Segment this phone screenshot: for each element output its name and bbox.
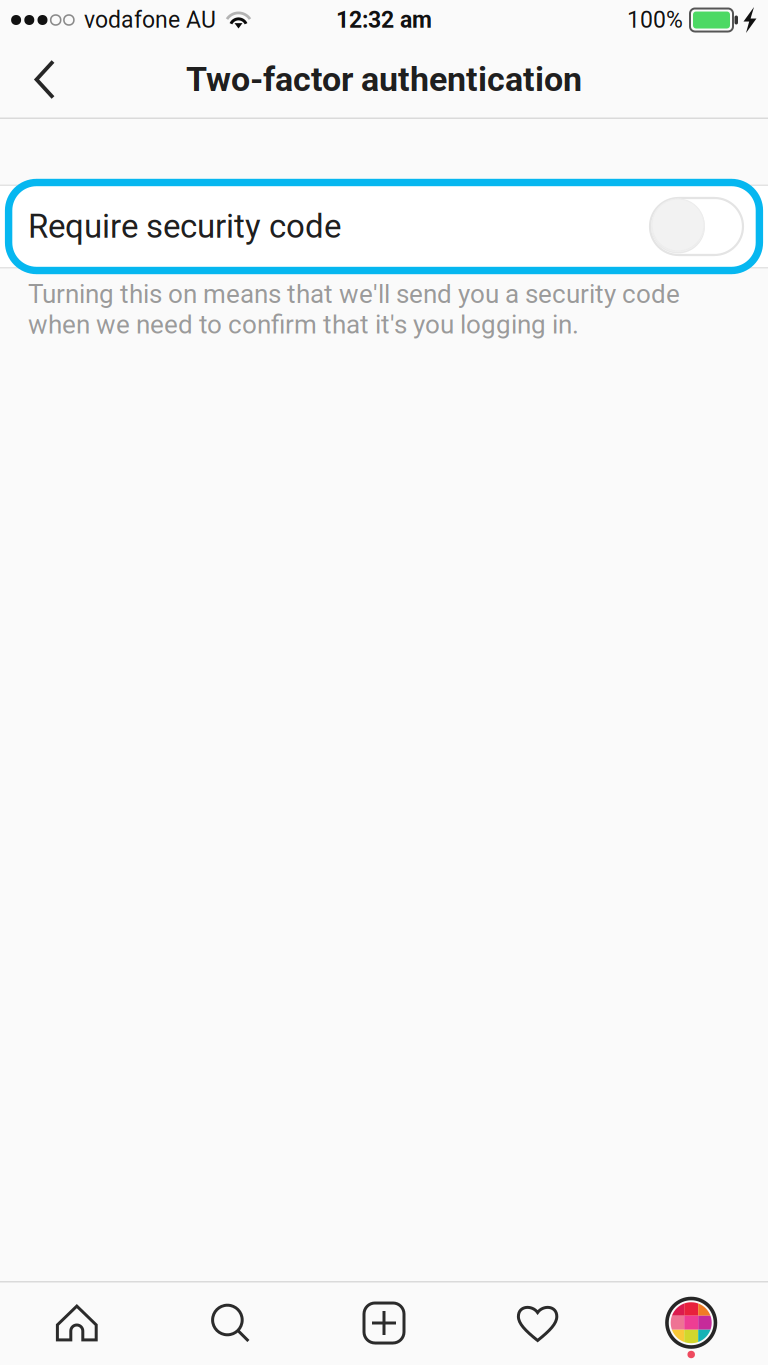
button[interactable]: Profile: [614, 1281, 768, 1365]
staticText: Two-factor authentication: [186, 60, 582, 99]
staticText: vodafone AU: [84, 6, 216, 33]
button[interactable]: Activity: [461, 1281, 614, 1365]
staticText: Turning this on means that we'll send yo…: [28, 279, 680, 340]
staticText: Require security code: [28, 207, 341, 246]
button[interactable]: Back: [14, 47, 76, 111]
staticText: 12:32 am: [336, 6, 432, 33]
button[interactable]: Require security code: [0, 179, 768, 274]
button[interactable]: Home: [0, 1281, 154, 1365]
staticText: 100%: [627, 6, 683, 33]
button[interactable]: New post: [307, 1281, 461, 1365]
button[interactable]: Search: [154, 1281, 307, 1365]
